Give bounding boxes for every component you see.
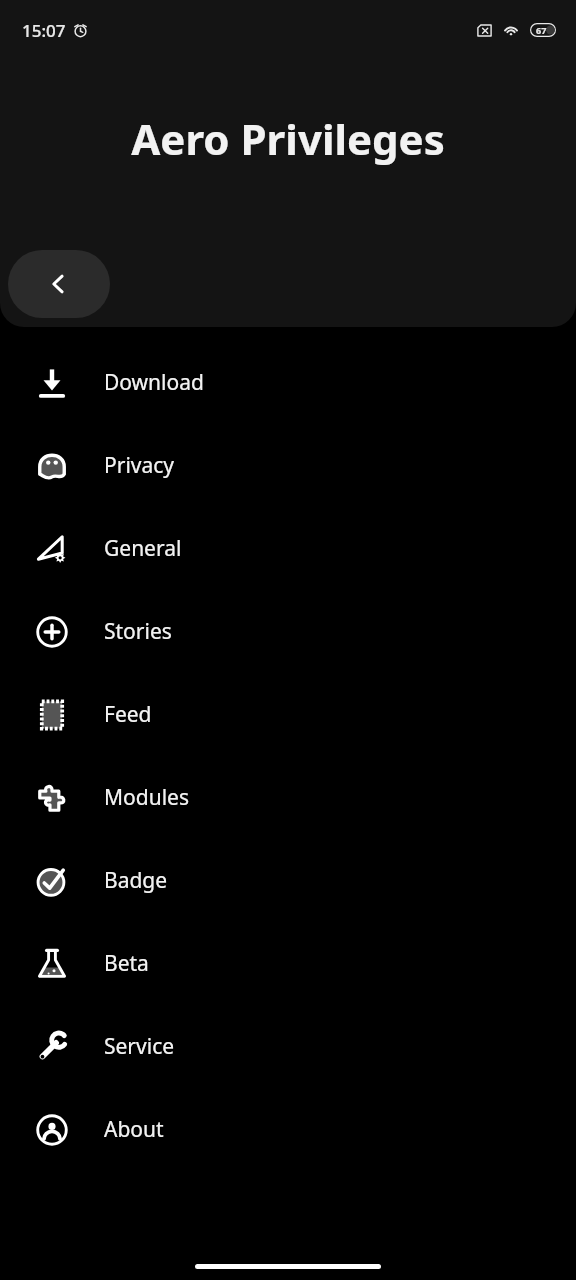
staticText: Privacy (104, 451, 175, 480)
staticText: General (104, 534, 182, 563)
staticText: Download (104, 368, 204, 397)
staticText: Service (104, 1032, 175, 1061)
button[interactable]: About (0, 1088, 576, 1171)
button[interactable]: Service (0, 1005, 576, 1088)
button[interactable]: Stories (0, 590, 576, 673)
staticText: Modules (104, 783, 189, 812)
staticText: 15:07 (22, 19, 66, 42)
button[interactable]: General (0, 507, 576, 590)
button[interactable]: Privacy (0, 424, 576, 507)
button[interactable]: Back (8, 250, 110, 318)
button[interactable]: Feed (0, 673, 576, 756)
staticText: 67 (536, 24, 547, 36)
button[interactable]: Download (0, 341, 576, 424)
button[interactable]: Badge (0, 839, 576, 922)
staticText: Feed (104, 700, 152, 729)
button[interactable]: Beta (0, 922, 576, 1005)
staticText: Aero Privileges (0, 110, 576, 167)
staticText: Stories (104, 617, 172, 646)
button[interactable]: Modules (0, 756, 576, 839)
staticText: Badge (104, 866, 168, 895)
staticText: About (104, 1115, 164, 1144)
staticText: Beta (104, 949, 149, 978)
